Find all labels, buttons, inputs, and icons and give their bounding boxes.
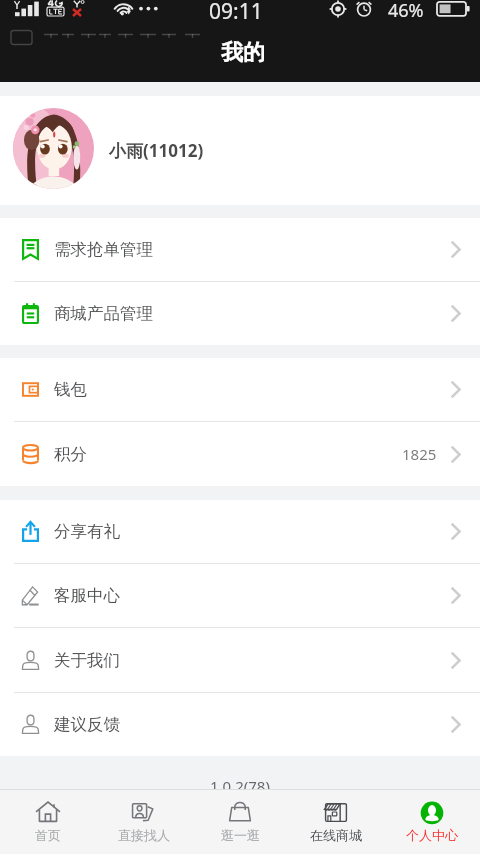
- staticText: 我的: [221, 39, 265, 67]
- button[interactable]: 关于我们: [0, 628, 480, 692]
- button[interactable]: 逛一逛: [192, 790, 288, 854]
- button[interactable]: 钱包: [0, 358, 480, 421]
- staticText: 1825: [402, 444, 437, 464]
- button[interactable]: 在线商城: [288, 790, 384, 854]
- button[interactable]: 小雨(11012): [0, 96, 480, 205]
- staticText: 关于我们: [54, 650, 120, 671]
- button[interactable]: 建议反馈: [0, 693, 480, 756]
- staticText: 逛一逛: [221, 827, 260, 843]
- staticText: 09:11: [209, 0, 263, 19]
- staticText: 钱包: [54, 379, 87, 400]
- staticText: 在线商城: [310, 827, 362, 843]
- staticText: 客服中心: [54, 585, 120, 606]
- staticText: 分享有礼: [54, 521, 120, 542]
- button[interactable]: 首页: [0, 790, 96, 854]
- button[interactable]: 客服中心: [0, 564, 480, 627]
- staticText: 商城产品管理: [54, 303, 153, 324]
- staticText: 首页: [35, 827, 61, 843]
- staticText: 建议反馈: [54, 714, 120, 735]
- staticText: 小雨(11012): [109, 139, 204, 162]
- staticText: 直接找人: [118, 827, 170, 843]
- button[interactable]: 直接找人: [96, 790, 192, 854]
- button[interactable]: 个人中心: [384, 790, 480, 854]
- staticText: 46%: [388, 0, 424, 20]
- staticText: 需求抢单管理: [54, 239, 153, 260]
- button[interactable]: 需求抢单管理: [0, 218, 480, 281]
- staticText: 个人中心: [406, 827, 458, 843]
- staticText: 积分: [54, 444, 87, 465]
- button[interactable]: 商城产品管理: [0, 282, 480, 345]
- staticText: 1.0.2(78): [210, 776, 270, 789]
- button[interactable]: 分享有礼: [0, 500, 480, 563]
- button[interactable]: 积分: [0, 422, 480, 486]
